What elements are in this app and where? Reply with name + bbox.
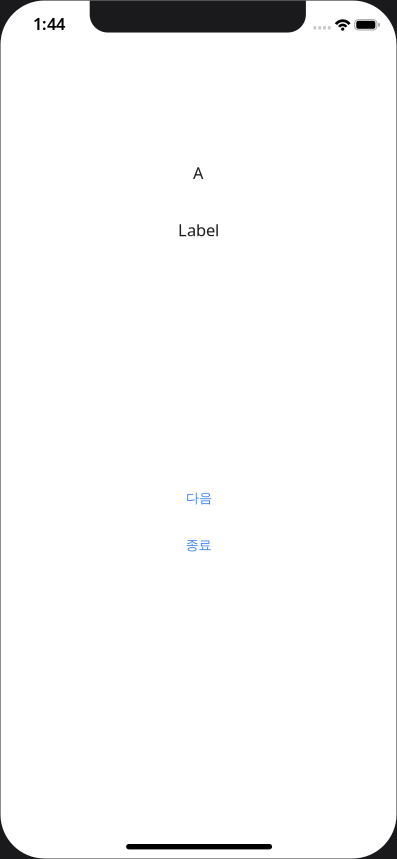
button[interactable]: 종료 [168,531,228,559]
staticText: A [193,162,203,184]
staticText: Label [178,219,219,241]
staticText: 다음 [186,490,212,506]
staticText: 1:44 [33,12,65,35]
staticText: 종료 [185,537,211,553]
button[interactable]: 다음 [169,484,229,512]
